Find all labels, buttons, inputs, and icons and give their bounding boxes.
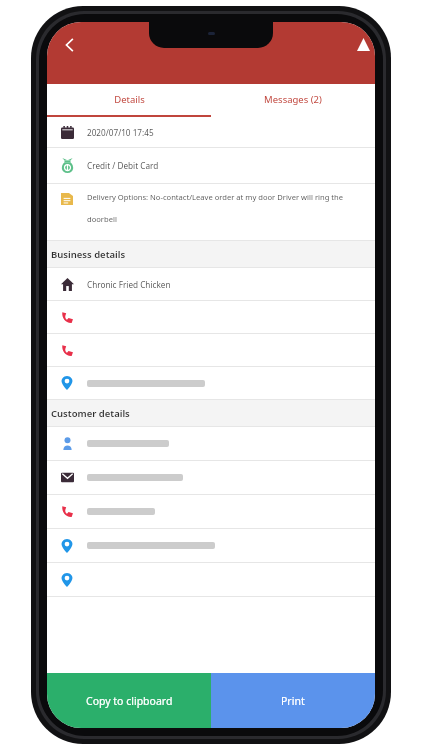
staticText: Delivery Options: No-contact/Leave order… (87, 192, 369, 224)
staticText: Copy to clipboard (86, 694, 173, 708)
button[interactable] (47, 367, 375, 399)
button[interactable] (47, 563, 375, 596)
staticText: Chronic Fried Chicken (87, 279, 171, 290)
button[interactable]: Details (47, 84, 211, 115)
staticText: Messages (2) (264, 93, 322, 106)
staticText: Customer details (51, 407, 130, 420)
button[interactable] (47, 529, 375, 562)
button[interactable]: Chronic Fried Chicken (47, 268, 375, 300)
button[interactable] (47, 334, 375, 366)
staticText: Credit / Debit Card (87, 160, 159, 171)
button[interactable]: Back (53, 28, 87, 62)
button[interactable]: 2020/07/10 17:45 (47, 117, 375, 147)
button[interactable]: More (349, 30, 375, 58)
button[interactable] (47, 495, 375, 528)
button[interactable] (47, 461, 375, 494)
staticText: Print (281, 694, 305, 708)
button[interactable]: Delivery Options: No-contact/Leave order… (47, 184, 375, 240)
button[interactable]: Print (211, 673, 375, 728)
staticText: Business details (51, 248, 126, 261)
staticText: Details (114, 93, 145, 106)
staticText: 2020/07/10 17:45 (87, 127, 154, 138)
button[interactable] (47, 301, 375, 333)
button[interactable]: Credit / Debit Card (47, 148, 375, 183)
button[interactable]: Copy to clipboard (47, 673, 211, 728)
button[interactable] (47, 427, 375, 460)
button[interactable]: Messages (2) (211, 84, 375, 115)
